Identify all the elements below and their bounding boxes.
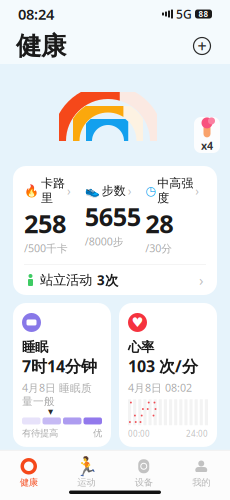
staticText: 7时14分钟	[22, 355, 97, 377]
button[interactable]: 站立活动	[13, 265, 217, 295]
button[interactable]: 睡眠	[13, 303, 111, 447]
button[interactable]: 奖章 x4	[194, 117, 220, 153]
staticText: 28	[145, 206, 173, 240]
staticText: 00:00	[128, 428, 150, 439]
staticText: +	[197, 35, 206, 57]
button[interactable]: 更多健康数据	[119, 455, 217, 495]
staticText: 有待提高	[22, 427, 58, 439]
staticText: 心率	[128, 339, 154, 355]
staticText: ›	[195, 183, 199, 199]
staticText: 运动	[77, 477, 95, 488]
staticText: ◷	[145, 184, 155, 197]
button[interactable]: 👟	[85, 183, 145, 248]
staticText: ♨	[26, 468, 37, 481]
staticText: 我的	[192, 477, 210, 488]
staticText: 健康	[20, 477, 38, 488]
staticText: 设备	[135, 477, 153, 488]
button[interactable]: 设备	[115, 457, 172, 489]
staticText: /8000步	[85, 234, 124, 248]
staticText: 🔥	[24, 184, 39, 198]
staticText: 258	[24, 206, 66, 240]
staticText: ›	[199, 270, 204, 290]
staticText: ›	[67, 183, 71, 199]
staticText: 103 次/分	[128, 355, 198, 377]
staticText: 5655	[85, 200, 141, 233]
staticText: ›	[128, 183, 132, 199]
button[interactable]: ◷	[145, 176, 206, 255]
staticText: 优	[93, 427, 102, 439]
button[interactable]: 🏃	[57, 457, 115, 489]
staticText: 步数	[102, 183, 126, 198]
staticText: 4月8日 睡眠质量一般	[22, 381, 92, 408]
staticText: ▼	[48, 408, 53, 415]
staticText: 08:24	[18, 4, 54, 24]
staticText: 站立活动	[40, 272, 92, 288]
staticText: 3次	[97, 271, 118, 289]
staticText: 👟	[85, 184, 100, 198]
staticText: 5G	[176, 6, 192, 22]
button[interactable]: 健康	[0, 457, 57, 489]
staticText: /500千卡	[24, 241, 68, 255]
staticText: 睡眠	[22, 339, 48, 355]
staticText: 中高强度	[157, 176, 193, 205]
button[interactable]: ♥	[119, 303, 217, 447]
button[interactable]: 我的	[172, 457, 230, 489]
staticText: 4月8日 08:02	[128, 381, 192, 395]
staticText: 🏃	[75, 456, 98, 477]
staticText: /30分	[145, 241, 172, 255]
staticText: 卡路里	[41, 176, 65, 205]
staticText: ☺	[131, 468, 144, 481]
staticText: 健康	[16, 30, 66, 61]
staticText: 24:00	[186, 428, 208, 439]
staticText: 88	[198, 9, 208, 19]
staticText: ♥	[131, 315, 143, 330]
button[interactable]: 更多健康数据	[13, 455, 111, 495]
button[interactable]: 添加	[190, 34, 214, 58]
button[interactable]: 🔥	[24, 176, 85, 255]
staticText: x4	[201, 138, 213, 153]
